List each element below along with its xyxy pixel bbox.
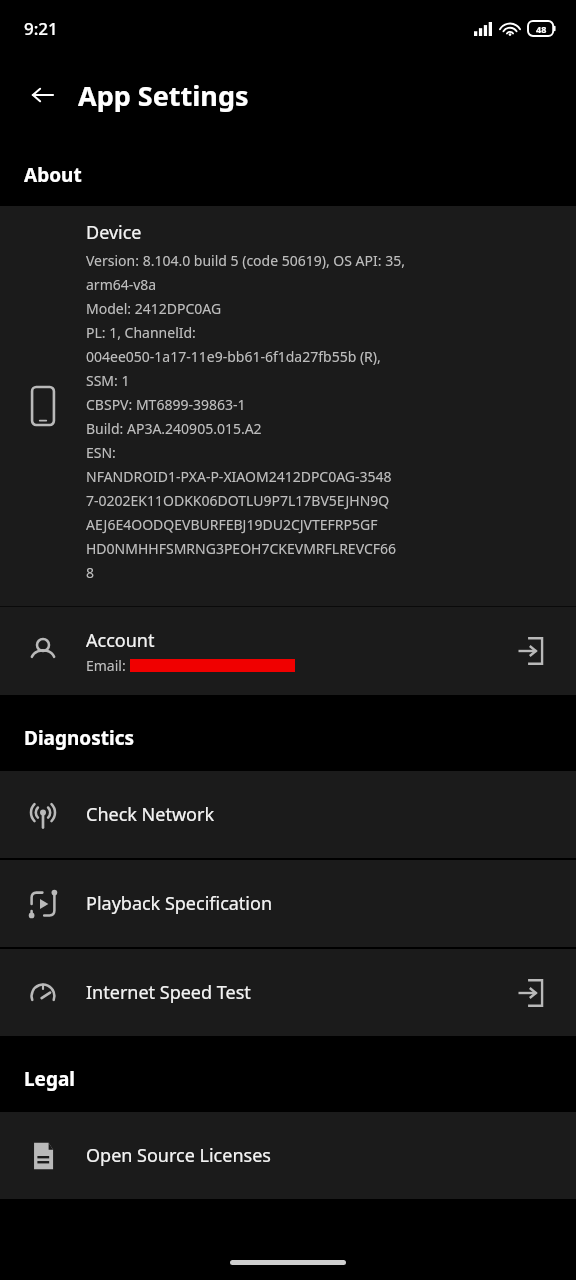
- button[interactable]: Internet Speed Test: [0, 949, 576, 1036]
- staticText: Device: [86, 220, 142, 245]
- staticText: Playback Specification: [86, 891, 576, 916]
- button[interactable]: Open Source Licenses: [0, 1112, 576, 1199]
- staticText: Check Network: [86, 802, 576, 827]
- staticText: About: [24, 162, 82, 188]
- staticText: Legal: [24, 1066, 76, 1092]
- button[interactable]: Sign out: [512, 631, 552, 671]
- staticText: 48: [536, 23, 547, 35]
- button[interactable]: Back: [18, 70, 68, 120]
- button[interactable]: Device: [0, 206, 576, 606]
- staticText: Email:: [86, 656, 126, 675]
- staticText: Version: 8.104.0 build 5 (code 50619), O…: [86, 251, 405, 582]
- button[interactable]: Playback Specification: [0, 860, 576, 947]
- staticText: App Settings: [78, 77, 249, 114]
- button[interactable]: Open: [512, 973, 552, 1013]
- staticText: Account: [86, 628, 155, 653]
- staticText: Internet Speed Test: [86, 980, 512, 1005]
- staticText: Diagnostics: [24, 725, 135, 751]
- staticText: Open Source Licenses: [86, 1143, 576, 1168]
- button[interactable]: Check Network: [0, 771, 576, 858]
- staticText: 9:21: [24, 17, 58, 40]
- button[interactable]: Account: [0, 607, 576, 695]
